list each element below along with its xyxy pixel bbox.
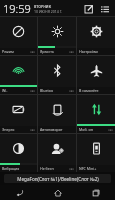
- button[interactable]: Home: [39, 185, 77, 200]
- staticText: NFC Mini+: [79, 166, 97, 171]
- staticText: Вибрация: [2, 166, 20, 171]
- button[interactable]: Яркость: [38, 17, 76, 55]
- button[interactable]: Режим полёта: [0, 17, 37, 55]
- button[interactable]: MegaFon(Слот №1)/Beeline(Слот №2): [4, 174, 111, 183]
- staticText: ВТОРНИК: [34, 4, 52, 9]
- staticText: 19:59: [3, 1, 31, 16]
- button[interactable]: Автоповорот: [38, 95, 76, 133]
- staticText: Режим полёта: [2, 49, 16, 54]
- button[interactable]: Вибрация: [0, 134, 37, 172]
- staticText: MegaFon(Слот №1)/Beeline(Слот №2): [17, 176, 99, 182]
- staticText: Энергосбереж.: [2, 127, 16, 132]
- staticText: Bluetooth: [40, 88, 54, 93]
- staticText: 10 ИЮНЯ 2014 Г.: [34, 9, 63, 14]
- staticText: Моб. интернет: [79, 127, 93, 132]
- button[interactable]: Энергосбереж.: [0, 95, 37, 133]
- button[interactable]: Edit: [82, 2, 96, 16]
- button[interactable]: Моб. интернет: [77, 95, 115, 133]
- staticText: Wi-Fi_Guest: [2, 88, 16, 93]
- staticText: Яркость: [40, 49, 54, 54]
- button[interactable]: Back: [0, 185, 39, 200]
- staticText: Автоповорот: [40, 127, 63, 132]
- staticText: В самолёте: [79, 88, 99, 93]
- button[interactable]: Настройки: [77, 17, 115, 55]
- button[interactable]: Wi-Fi_Guest: [0, 56, 37, 94]
- button[interactable]: Bluetooth: [38, 56, 76, 94]
- button[interactable]: Не беспокоить: [38, 134, 76, 172]
- button[interactable]: Settings list: [98, 2, 112, 16]
- button[interactable]: Recents: [77, 185, 115, 200]
- staticText: Не беспокоить: [40, 166, 54, 171]
- staticText: Настройки: [79, 49, 98, 54]
- button[interactable]: В самолёте: [77, 56, 115, 94]
- button[interactable]: NFC Mini+: [77, 134, 115, 172]
